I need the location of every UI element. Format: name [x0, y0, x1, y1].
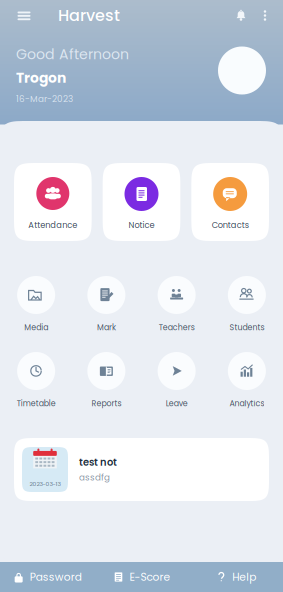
staticText: assdfg	[79, 471, 110, 484]
staticText: Contacts	[212, 219, 249, 231]
button[interactable]: Media	[1, 276, 71, 333]
staticText: Analytics	[229, 398, 264, 409]
staticText: E-Score	[129, 569, 170, 584]
button[interactable]: Attendance	[14, 163, 92, 241]
staticText: Timetable	[17, 398, 56, 409]
staticText: Good Afternoon	[16, 44, 129, 64]
staticText: Students	[229, 322, 264, 333]
button[interactable]: Mark	[71, 276, 141, 333]
button[interactable]: Students	[212, 276, 282, 333]
staticText: 2023-03-13	[29, 480, 60, 488]
button[interactable]: Analytics	[212, 352, 282, 409]
button[interactable]: Timetable	[1, 352, 71, 409]
button[interactable]: Contacts	[191, 163, 269, 241]
staticText: Harvest	[58, 4, 120, 27]
staticText: 16-Mar-2023	[16, 93, 73, 105]
button[interactable]: Help	[189, 562, 283, 592]
staticText: Leave	[166, 398, 188, 409]
button[interactable]: More options	[254, 0, 276, 33]
staticText: Reports	[91, 398, 121, 409]
button[interactable]: Leave	[141, 352, 212, 409]
button[interactable]: 2023-03-13	[14, 438, 269, 501]
staticText: Attendance	[28, 219, 77, 231]
button[interactable]: Menu	[11, 0, 37, 34]
staticText: Media	[24, 322, 48, 333]
staticText: Teachers	[159, 322, 195, 333]
staticText: Mark	[97, 322, 116, 333]
staticText: Notice	[128, 219, 154, 231]
button[interactable]: Password	[0, 562, 94, 592]
staticText: Trogon	[16, 68, 66, 88]
button[interactable]: Notice	[103, 163, 180, 241]
button[interactable]: E-Score	[94, 562, 189, 592]
button[interactable]: Notifications	[228, 0, 254, 33]
staticText: Help	[232, 569, 256, 584]
staticText: Password	[30, 569, 82, 584]
button[interactable]: Reports	[71, 352, 141, 409]
staticText: test not	[79, 455, 117, 469]
button[interactable]: Teachers	[141, 276, 212, 333]
